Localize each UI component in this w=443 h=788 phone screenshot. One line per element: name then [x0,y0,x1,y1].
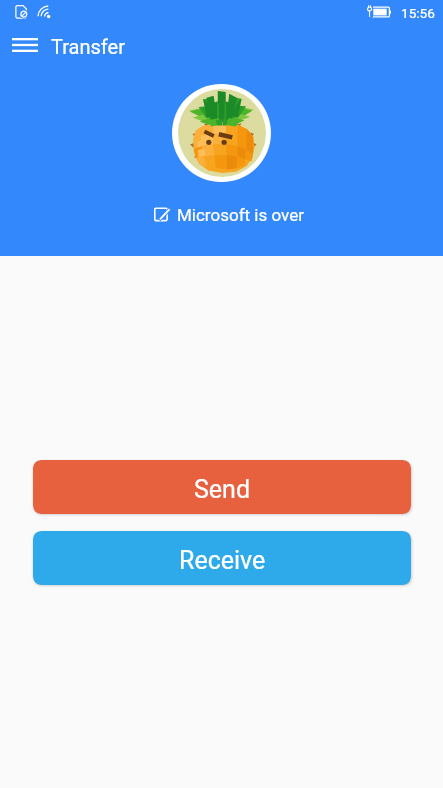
staticText: Send [194,475,251,504]
button[interactable]: Profile picture [172,84,271,182]
button[interactable]: Open navigation menu [5,28,45,62]
staticText: 15:56 [401,5,435,21]
button[interactable]: Microsoft is over [154,205,304,225]
staticText: Receive [179,546,266,575]
staticText: Transfer [51,35,125,58]
button[interactable]: Send [33,460,411,514]
staticText: Microsoft is over [177,205,304,225]
button[interactable]: Receive [33,531,411,585]
